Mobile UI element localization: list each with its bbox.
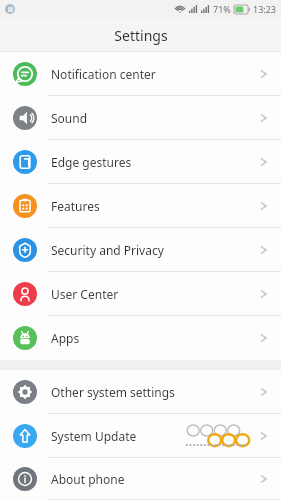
staticText: Settings xyxy=(114,26,168,45)
button[interactable]: Security and Privacy xyxy=(0,228,281,272)
staticText: System Update xyxy=(51,428,137,444)
button[interactable]: Edge gestures xyxy=(0,140,281,184)
button[interactable]: Other system settings xyxy=(0,370,281,414)
button[interactable]: System Update xyxy=(0,414,281,458)
staticText: Other system settings xyxy=(51,384,175,400)
staticText: Edge gestures xyxy=(51,154,132,170)
button[interactable]: Sound xyxy=(0,96,281,140)
staticText: User Center xyxy=(51,286,119,302)
staticText: Security and Privacy xyxy=(51,242,164,258)
button[interactable]: About phone xyxy=(0,458,281,500)
staticText: 71% xyxy=(213,3,231,15)
staticText: About phone xyxy=(51,471,125,487)
staticText: Features xyxy=(51,198,100,214)
staticText: Apps xyxy=(51,330,80,346)
button[interactable]: Apps xyxy=(0,316,281,360)
button[interactable]: Features xyxy=(0,184,281,228)
button[interactable]: User Center xyxy=(0,272,281,316)
staticText: 13:23 xyxy=(253,3,277,15)
staticText: Notification center xyxy=(51,66,156,82)
staticText: Sound xyxy=(51,110,88,126)
button[interactable]: Notification center xyxy=(0,52,281,96)
